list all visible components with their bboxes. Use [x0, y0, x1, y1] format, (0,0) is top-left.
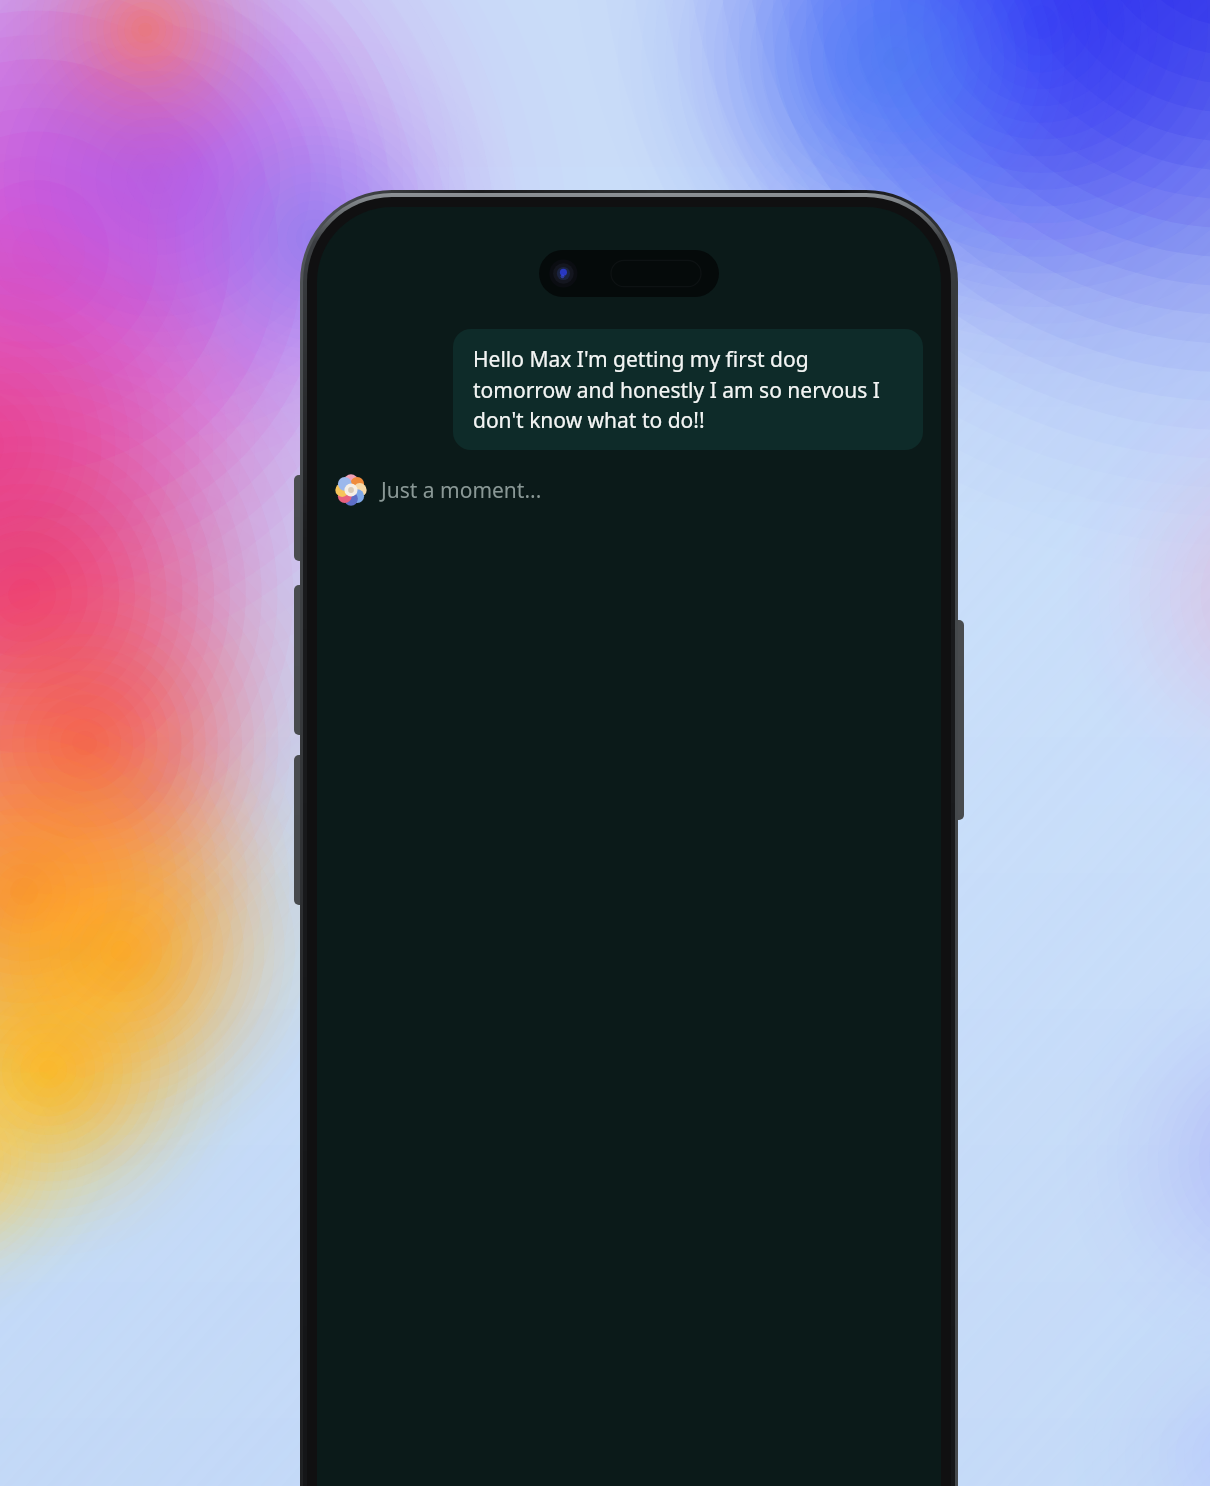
staticText: Just a moment...	[381, 476, 542, 505]
other: Assistant avatar	[335, 474, 367, 506]
other: Dynamic Island	[539, 250, 719, 297]
button[interactable]: Hello Max I'm getting my first dog tomor…	[453, 329, 923, 450]
staticText: Hello Max I'm getting my first dog tomor…	[473, 345, 903, 434]
button[interactable]: Assistant avatar	[317, 470, 941, 510]
